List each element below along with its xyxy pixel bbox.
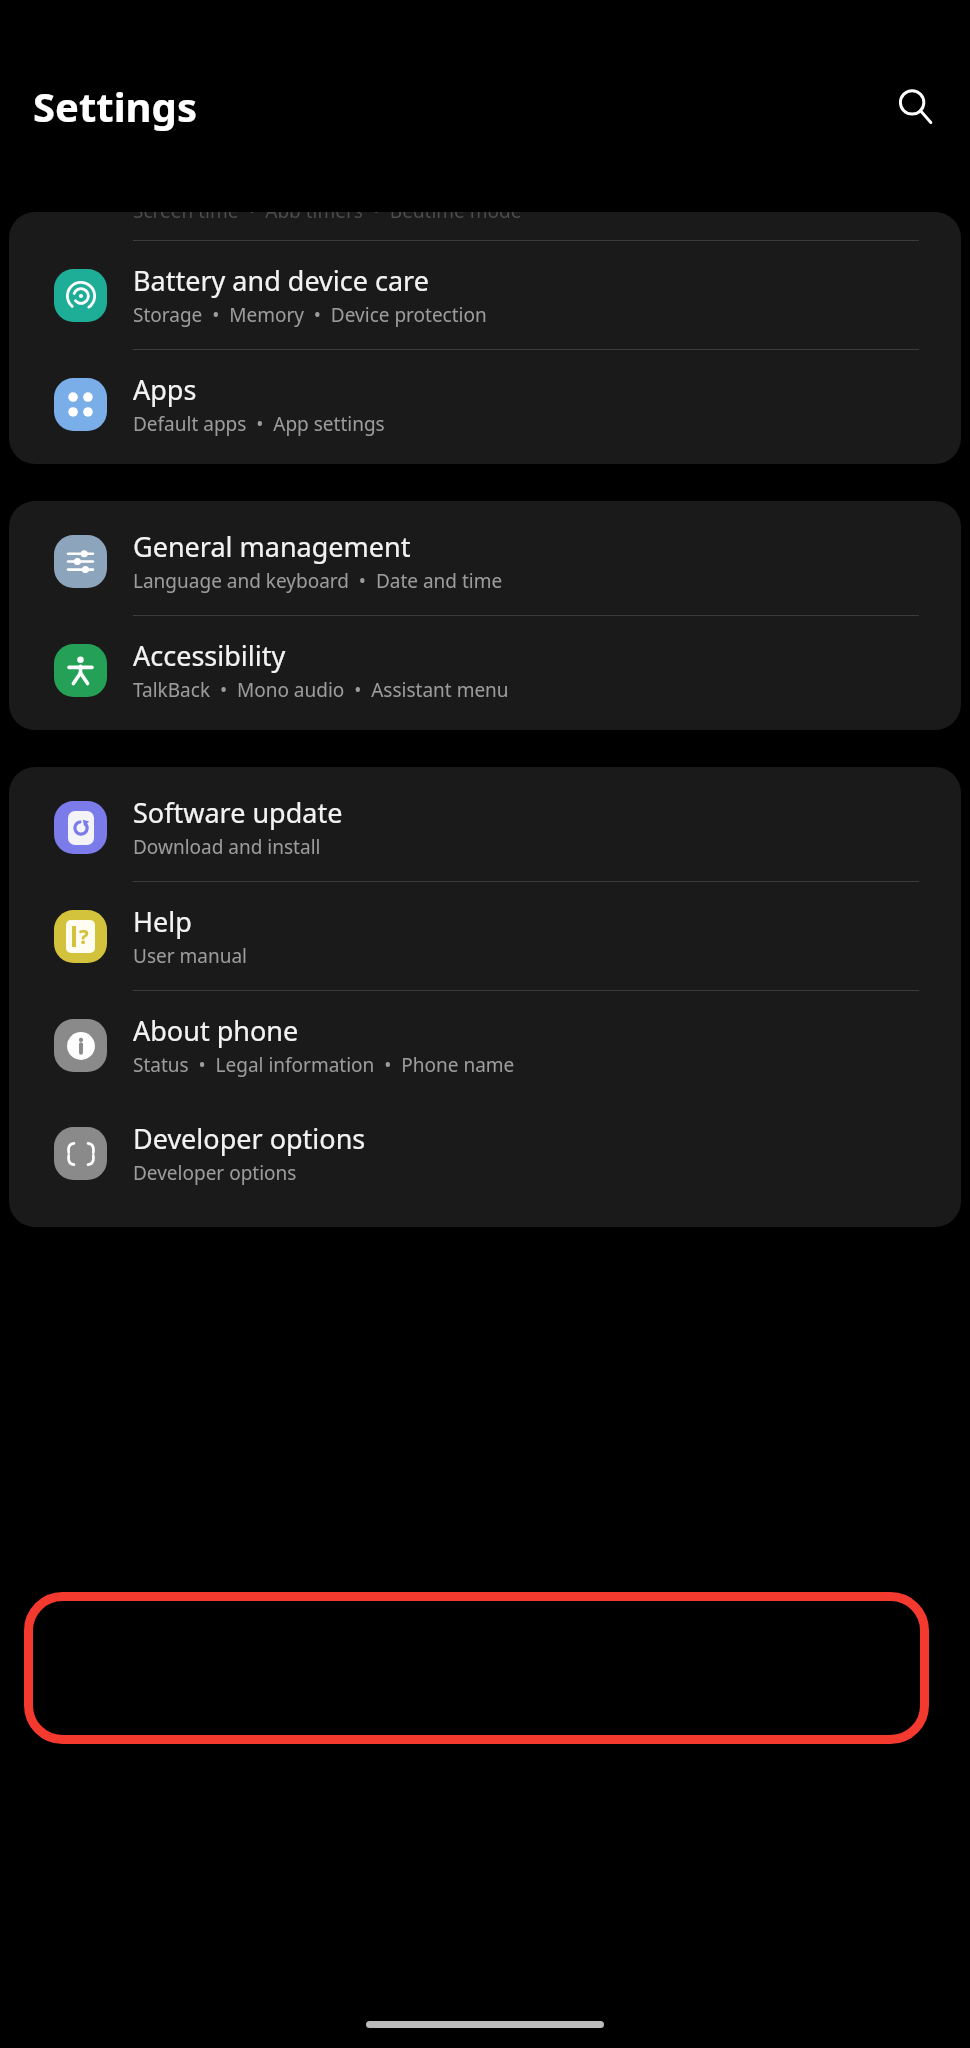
staticText: TalkBack • Mono audio • Assistant menu (133, 677, 509, 703)
staticText: Language and keyboard • Date and time (133, 568, 503, 594)
button[interactable]: Screen time • App timers • Bedtime mode (9, 212, 961, 232)
staticText: General management (133, 528, 411, 565)
button[interactable]: About phone (9, 991, 961, 1099)
staticText: Screen time • App timers • Bedtime mode (133, 212, 522, 218)
button[interactable]: ? (9, 882, 961, 990)
staticText: Status • Legal information • Phone name (133, 1052, 515, 1078)
staticText: Settings (33, 79, 197, 133)
staticText: ? (79, 923, 89, 950)
button[interactable]: Apps (9, 350, 961, 458)
staticText: User manual (133, 943, 247, 969)
staticText: About phone (133, 1012, 299, 1049)
button[interactable]: Developer options (9, 1099, 961, 1207)
staticText: Apps (133, 371, 197, 408)
staticText: Default apps • App settings (133, 411, 385, 437)
button[interactable]: Battery and device care (9, 241, 961, 349)
staticText: Accessibility (133, 637, 286, 674)
staticText: Download and install (133, 834, 321, 860)
staticText: Developer options (133, 1120, 366, 1157)
button[interactable]: Search (884, 75, 946, 137)
staticText: Help (133, 903, 192, 940)
button[interactable]: Accessibility (9, 616, 961, 724)
staticText: Storage • Memory • Device protection (133, 302, 487, 328)
staticText: Developer options (133, 1160, 297, 1186)
staticText: Battery and device care (133, 262, 429, 299)
button[interactable]: Software update (9, 773, 961, 881)
button[interactable]: General management (9, 507, 961, 615)
staticText: Software update (133, 794, 343, 831)
